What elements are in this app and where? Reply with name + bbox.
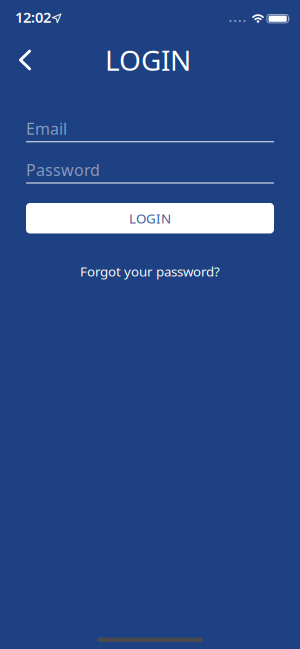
button[interactable]: Password: [26, 159, 274, 183]
button[interactable]: Back: [0, 41, 31, 78]
staticText: Password: [26, 159, 100, 180]
staticText: Email: [26, 118, 67, 139]
staticText: 12:02: [15, 7, 51, 27]
button[interactable]: Forgot your password?: [26, 262, 274, 280]
staticText: Forgot your password?: [80, 262, 220, 280]
button[interactable]: LOGIN: [26, 203, 274, 233]
button[interactable]: Email: [26, 118, 274, 142]
staticText: LOGIN: [105, 41, 191, 79]
staticText: LOGIN: [129, 209, 171, 227]
